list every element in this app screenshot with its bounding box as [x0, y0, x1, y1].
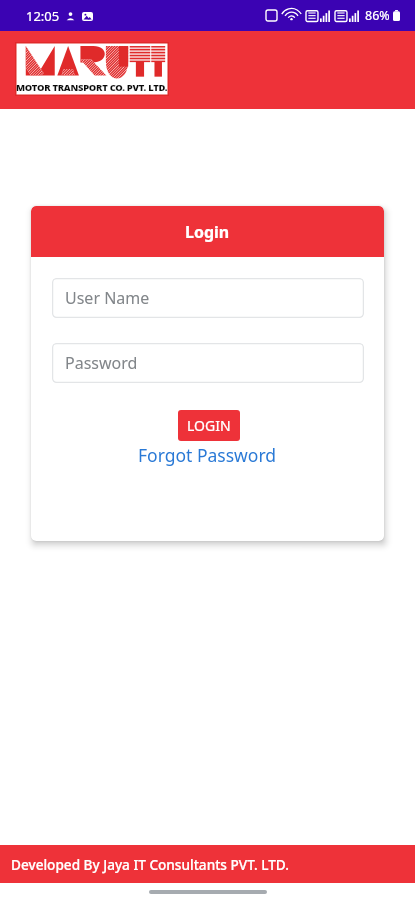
- staticText: Developed By Jaya IT Consultants PVT. LT…: [11, 855, 289, 874]
- button[interactable]: User Name: [52, 278, 364, 318]
- staticText: MOTOR TRANSPORT CO. PVT. LTD.: [16, 81, 168, 94]
- staticText: Password: [65, 352, 138, 374]
- staticText: User Name: [65, 287, 150, 309]
- staticText: 12:05: [26, 7, 60, 25]
- staticText: Login: [185, 221, 230, 243]
- staticText: 86%: [365, 7, 390, 24]
- button[interactable]: Maruti Motor Transport Co. Pvt. Ltd. log…: [15, 42, 169, 96]
- button[interactable]: Forgot Password: [132, 441, 283, 469]
- staticText: Forgot Password: [138, 443, 277, 467]
- staticText: LOGIN: [187, 416, 231, 435]
- button[interactable]: LOGIN: [178, 410, 240, 441]
- button[interactable]: Password: [52, 343, 364, 383]
